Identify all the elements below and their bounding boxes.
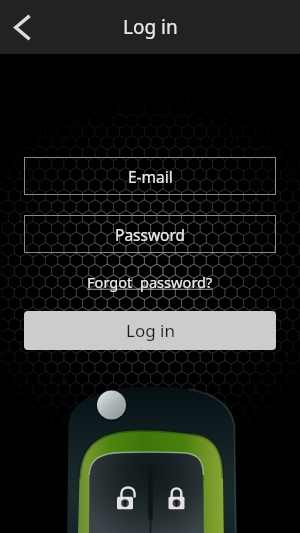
staticText: Password (115, 224, 186, 245)
button[interactable]: Forgot password? (87, 272, 213, 292)
button[interactable]: Password (24, 215, 276, 253)
staticText: Log in (126, 319, 175, 342)
button[interactable]: Log in (24, 311, 276, 350)
button[interactable]: E-mail (24, 157, 276, 195)
button[interactable]: Back (0, 5, 44, 49)
staticText: E-mail (128, 166, 173, 187)
staticText: Log in (123, 14, 178, 40)
